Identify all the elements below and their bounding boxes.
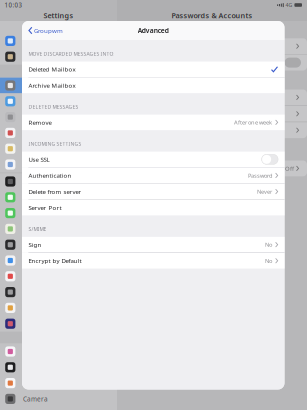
staticText: INCOMING SETTINGS xyxy=(28,140,81,147)
staticText: Deleted Mailbox xyxy=(28,65,75,73)
staticText: Encrypt by Default xyxy=(28,257,81,265)
staticText: Remove xyxy=(28,118,51,126)
staticText: Camera xyxy=(23,395,48,403)
staticText: 10:03 xyxy=(4,1,22,9)
staticText: Server Port xyxy=(28,204,61,212)
staticText: S/MIME xyxy=(28,226,46,232)
button[interactable]: Encrypt by Default xyxy=(22,253,284,268)
staticText: No xyxy=(265,257,272,264)
staticText: Use SSL xyxy=(28,155,49,163)
button[interactable]: Delete from server xyxy=(22,184,284,199)
staticText: Advanced xyxy=(138,26,169,35)
button[interactable]: Groupwm xyxy=(22,21,67,40)
button[interactable]: Use SSL xyxy=(22,152,284,167)
button[interactable]: Archive Mailbox xyxy=(22,78,284,93)
button[interactable]: Deleted Mailbox xyxy=(22,61,284,77)
button[interactable]: Server Port xyxy=(22,200,284,215)
staticText: Never xyxy=(257,188,272,195)
staticText: Settings xyxy=(43,11,73,20)
staticText: Groupwm xyxy=(34,26,63,34)
button[interactable]: Remove xyxy=(22,115,284,130)
staticText: After one week xyxy=(234,119,272,126)
staticText: Archive Mailbox xyxy=(28,81,75,89)
staticText: Off xyxy=(285,164,294,172)
button[interactable]: Authentication xyxy=(22,168,284,183)
staticText: Password xyxy=(248,172,272,179)
staticText: Passwords & Accounts xyxy=(171,11,252,20)
staticText: DELETED MESSAGES xyxy=(28,103,78,110)
staticText: 4G xyxy=(285,1,292,8)
staticText: Authentication xyxy=(28,171,71,179)
staticText: Sign xyxy=(28,241,41,249)
staticText: No xyxy=(265,241,272,248)
staticText: MOVE DISCARDED MESSAGES INTO: xyxy=(28,50,114,57)
button[interactable]: Sign xyxy=(22,237,284,252)
staticText: Delete from server xyxy=(28,187,81,196)
